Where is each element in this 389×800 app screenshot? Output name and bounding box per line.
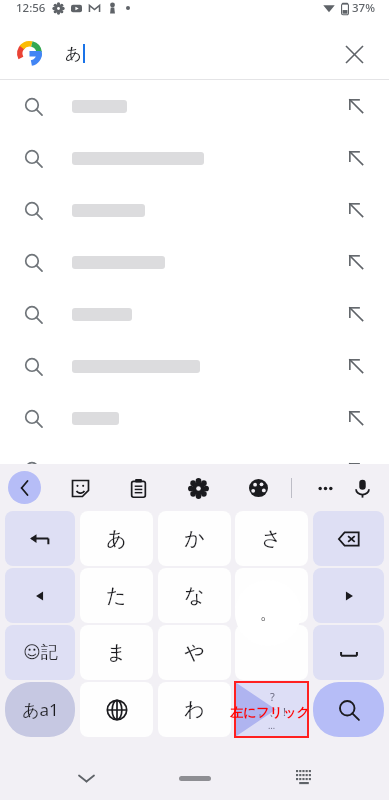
button[interactable]: Undo [5, 511, 75, 566]
staticText: ? [270, 689, 275, 704]
button[interactable]: な [158, 568, 231, 623]
button[interactable]: Hide keyboard [74, 766, 98, 790]
button[interactable]: さ [235, 511, 308, 566]
button[interactable]: Cursor right [313, 568, 384, 623]
staticText: あa1 [22, 698, 59, 721]
button[interactable]: Insert [345, 355, 367, 377]
button[interactable]: は [235, 568, 308, 623]
button[interactable]: More [310, 473, 340, 503]
button[interactable]: Switch keyboard [292, 766, 316, 790]
staticText: な [184, 583, 205, 608]
other: Google [17, 41, 42, 66]
button[interactable]: Insert [345, 407, 367, 429]
button[interactable]: Themes [243, 473, 273, 503]
button[interactable]: Insert [345, 459, 367, 481]
button[interactable]: Insert [0, 444, 389, 496]
button[interactable]: Google [0, 28, 389, 79]
button[interactable]: Insert [345, 199, 367, 221]
staticText: ! [283, 704, 286, 719]
button[interactable]: わ [158, 682, 231, 737]
button[interactable]: Insert [0, 288, 389, 340]
staticText: あ [106, 526, 127, 551]
button[interactable]: Insert [345, 147, 367, 169]
button[interactable]: ☺記 [5, 625, 75, 680]
button[interactable]: Cursor left [5, 568, 75, 623]
button[interactable]: Insert [0, 392, 389, 444]
button[interactable]: Insert [345, 303, 367, 325]
staticText: 左にフリック [230, 704, 310, 720]
button[interactable]: Insert [345, 251, 367, 273]
button[interactable]: Clipboard [123, 473, 153, 503]
button[interactable]: Stickers [65, 473, 95, 503]
button[interactable]: Voice input [347, 473, 377, 503]
staticText: 、 [269, 705, 280, 719]
staticText: わ [184, 697, 205, 722]
button[interactable]: Backspace [313, 511, 384, 566]
button[interactable]: Insert [0, 80, 389, 132]
button[interactable]: Search [313, 682, 384, 737]
button[interactable]: あ [80, 511, 153, 566]
staticText: 12:56 [16, 0, 46, 16]
button[interactable]: ま [80, 625, 153, 680]
staticText: や [184, 640, 205, 665]
button[interactable]: Space [313, 625, 384, 680]
staticText: 。 [260, 603, 277, 624]
button[interactable]: た [80, 568, 153, 623]
staticText: 。 [258, 706, 267, 717]
button[interactable]: Insert [0, 184, 389, 236]
staticText: ま [106, 640, 127, 665]
button[interactable]: Clear [337, 37, 371, 71]
button[interactable]: Settings [183, 473, 213, 503]
button[interactable]: や [158, 625, 231, 680]
staticText: か [184, 526, 205, 551]
button[interactable]: Language [80, 682, 153, 737]
button[interactable]: Back [8, 471, 41, 504]
button[interactable]: Insert [345, 95, 367, 117]
button[interactable]: Insert [0, 236, 389, 288]
staticText: た [106, 583, 127, 608]
button[interactable]: Punctuation flick left [235, 682, 308, 737]
button[interactable]: あa1 [5, 682, 75, 737]
staticText: … [268, 719, 276, 731]
staticText: あ [65, 43, 82, 64]
button[interactable]: か [158, 511, 231, 566]
button[interactable]: Insert [0, 132, 389, 184]
staticText: さ [261, 526, 282, 551]
staticText: 37% [352, 0, 375, 16]
staticText: ☺記 [23, 642, 58, 663]
button[interactable]: Insert [0, 340, 389, 392]
button[interactable]: Home [179, 776, 211, 781]
